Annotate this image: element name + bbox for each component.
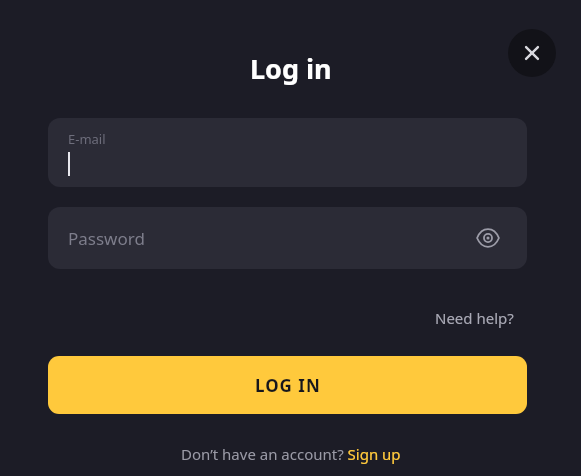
staticText: Password xyxy=(68,227,145,250)
button[interactable]: Show password xyxy=(471,221,505,255)
staticText: Don’t have an account? Sign up xyxy=(181,444,401,464)
staticText: Log in xyxy=(250,50,332,87)
button[interactable]: Close xyxy=(508,29,556,77)
staticText: LOG IN xyxy=(255,374,321,397)
staticText: Need help? xyxy=(435,308,514,328)
button[interactable]: Don’t have an account? Sign up xyxy=(177,442,405,466)
button[interactable]: LOG IN xyxy=(48,356,527,414)
button[interactable]: E-mail xyxy=(48,118,527,187)
staticText: E-mail xyxy=(68,130,106,148)
button[interactable]: Need help? xyxy=(431,305,518,331)
button[interactable]: Password xyxy=(48,207,527,269)
